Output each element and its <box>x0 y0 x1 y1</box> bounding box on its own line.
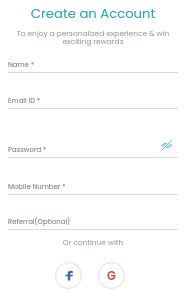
staticText: Referral(Optional) <box>8 217 71 227</box>
staticText: G <box>107 268 116 284</box>
button[interactable]: Continue with Google <box>98 262 125 289</box>
button[interactable]: Show password <box>159 138 174 153</box>
button[interactable]: Name * <box>8 60 178 73</box>
button[interactable]: Email ID * <box>8 96 178 109</box>
button[interactable]: Continue with Facebook <box>55 262 82 289</box>
staticText: Create an Account <box>0 4 186 22</box>
button[interactable]: Password * <box>8 145 178 158</box>
staticText: Name * <box>8 60 35 70</box>
staticText: Email ID * <box>8 96 41 106</box>
staticText: Password * <box>8 145 47 155</box>
staticText: To enjoy a personalized experience & win… <box>14 28 172 46</box>
staticText: Mobile Number * <box>8 182 66 192</box>
button[interactable]: Mobile Number * <box>8 182 178 195</box>
staticText: Or continue with <box>0 237 186 247</box>
button[interactable]: Referral(Optional) <box>8 217 178 230</box>
